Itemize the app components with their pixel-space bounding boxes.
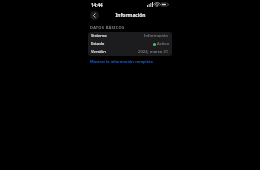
staticText: Activo bbox=[157, 41, 169, 47]
staticText: Versión bbox=[91, 49, 106, 55]
staticText: 14:44 bbox=[91, 2, 103, 8]
button[interactable]: Sistema bbox=[88, 32, 172, 40]
staticText: DATOS BÁSICOS bbox=[90, 25, 125, 30]
staticText: Información bbox=[115, 12, 146, 19]
button[interactable]: Estado bbox=[88, 40, 172, 48]
staticText: Información bbox=[144, 33, 169, 39]
button[interactable]: Mostrar la información completa bbox=[88, 58, 155, 66]
button[interactable]: Versión bbox=[88, 48, 172, 56]
staticText: 2024, marzo 21 bbox=[138, 49, 169, 55]
staticText: Sistema bbox=[91, 33, 107, 39]
button[interactable]: Back bbox=[90, 11, 99, 20]
staticText: Estado bbox=[91, 41, 105, 47]
staticText: Mostrar la información completa bbox=[90, 59, 153, 64]
